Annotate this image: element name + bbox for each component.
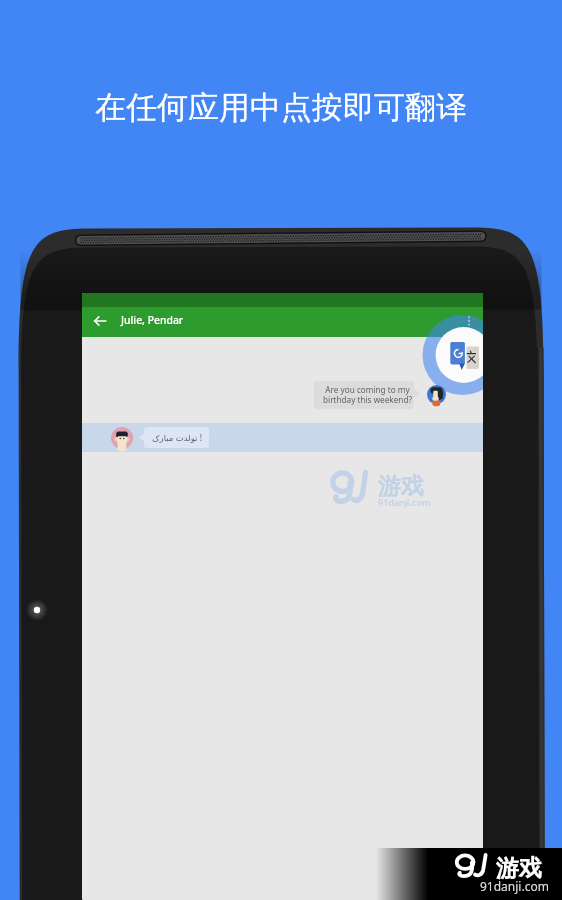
staticText: Julie, Pendar (121, 313, 184, 327)
button[interactable]: Are you coming to my birthday this weeke… (314, 381, 414, 409)
staticText: 游戏 (496, 854, 542, 883)
staticText: 游戏 (378, 472, 424, 501)
staticText: Are you coming to my birthday this weeke… (323, 384, 412, 406)
staticText: 91danji.com (480, 878, 549, 894)
button[interactable]: Back (86, 307, 114, 335)
staticText: 91danji.com (378, 496, 431, 508)
staticText: تولدت مبارک ! (152, 432, 202, 444)
button[interactable]: تولدت مبارک ! (82, 423, 483, 452)
button[interactable]: More options (455, 307, 483, 335)
staticText: 在任何应用中点按即可翻译 (95, 88, 467, 127)
button[interactable]: Google Translate bubble (421, 313, 483, 409)
